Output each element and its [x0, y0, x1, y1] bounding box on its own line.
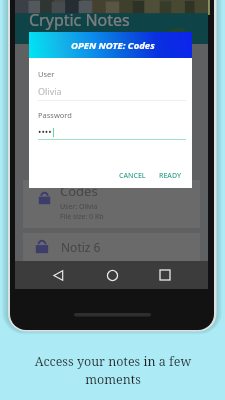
staticText: User: [38, 69, 55, 79]
button[interactable]: Notiz 6: [23, 233, 200, 261]
staticText: CANCEL: [119, 171, 146, 181]
staticText: Notiz 6: [61, 239, 101, 255]
staticText: User: Olivia: [60, 202, 98, 212]
button[interactable]: Home: [101, 264, 123, 286]
staticText: Cryptic Notes: [29, 9, 130, 31]
staticText: File size: 0 Kb: [60, 212, 104, 222]
staticText: Access your notes in a few moments: [23, 353, 203, 388]
staticText: Codes: [60, 182, 98, 200]
staticText: OPEN NOTE: Codes: [71, 39, 155, 52]
button[interactable]: Back: [47, 264, 69, 286]
staticText: Olivia: [38, 85, 62, 97]
button[interactable]: READY: [155, 168, 186, 184]
staticText: ••••: [38, 125, 52, 137]
button[interactable]: Recent apps: [154, 264, 176, 286]
staticText: Password: [38, 110, 72, 120]
button[interactable]: Codes: [23, 180, 200, 228]
button[interactable]: CANCEL: [115, 168, 150, 184]
staticText: READY: [159, 171, 182, 181]
